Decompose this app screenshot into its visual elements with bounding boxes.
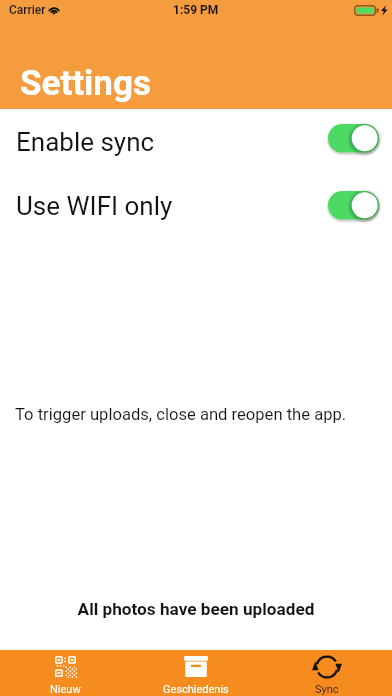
staticText: 1:59 PM xyxy=(173,3,219,17)
staticText: To trigger uploads, close and reopen the… xyxy=(15,405,347,424)
staticText: Enable sync xyxy=(16,127,328,157)
staticText: Use WIFI only xyxy=(16,191,328,221)
staticText: All photos have been uploaded xyxy=(0,599,392,619)
other: Nieuw xyxy=(55,656,76,677)
button[interactable]: Toggle xyxy=(328,121,385,156)
staticText: Settings xyxy=(20,63,151,104)
button[interactable]: Use WIFI only xyxy=(0,178,392,234)
button[interactable]: Toggle xyxy=(328,188,385,223)
staticText: Geschiedenis xyxy=(163,683,229,696)
button[interactable]: Sync xyxy=(261,650,392,696)
staticText: Carrier xyxy=(9,3,46,17)
staticText: Sync xyxy=(315,683,339,696)
staticText: Nieuw xyxy=(50,683,81,696)
button[interactable]: Geschiedenis xyxy=(130,650,261,696)
other: Geschiedenis xyxy=(184,655,208,677)
button[interactable]: Nieuw xyxy=(0,650,130,696)
button[interactable]: Enable sync xyxy=(0,114,392,170)
other: Sync xyxy=(312,655,342,679)
